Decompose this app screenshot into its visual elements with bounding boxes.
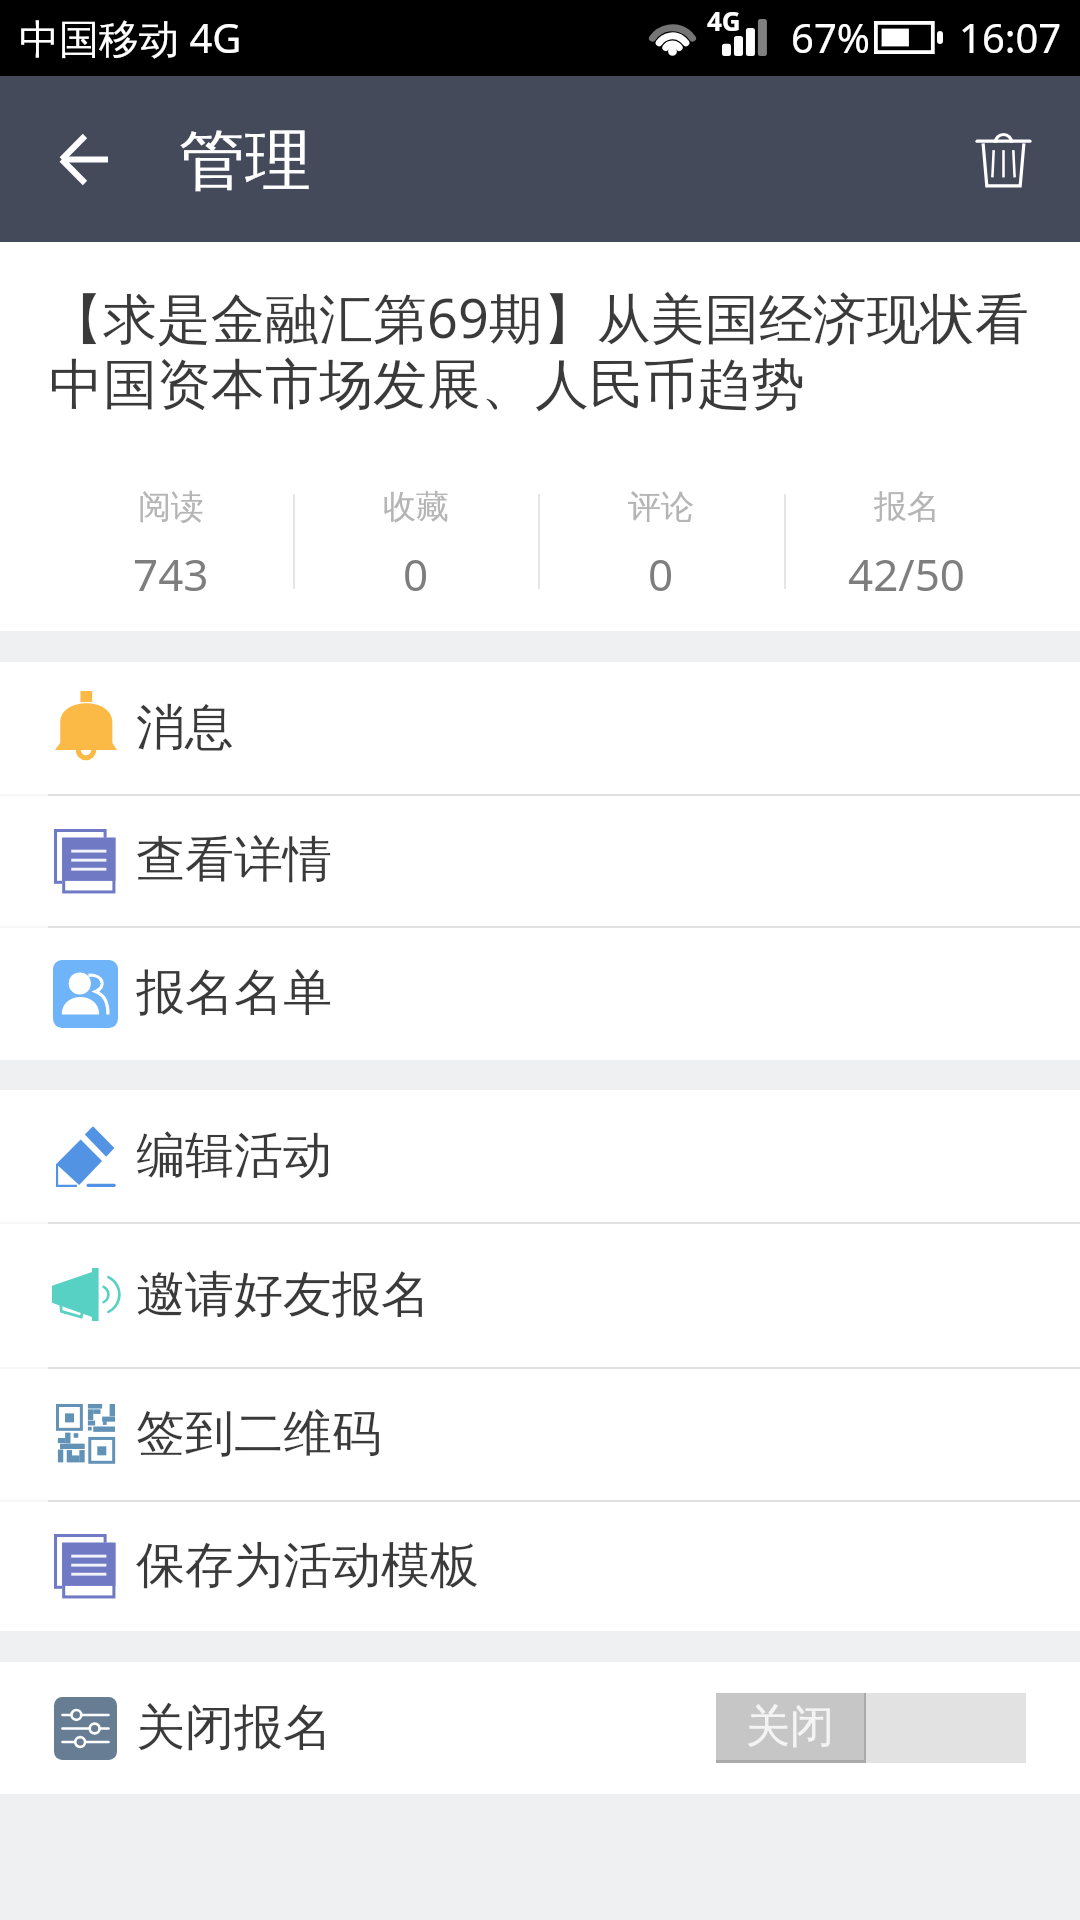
staticText: 16:07 [959, 10, 1062, 64]
button[interactable]: 编辑活动 [0, 1090, 1080, 1222]
staticText: 中国移动 4G [19, 10, 242, 65]
button[interactable]: 关闭报名 [0, 1662, 1080, 1794]
staticText: 评论 [628, 486, 694, 528]
staticText: 4G [707, 3, 741, 38]
staticText: 消息 [136, 697, 234, 759]
staticText: 关闭 [746, 1699, 834, 1754]
button[interactable]: 关闭 [716, 1693, 1026, 1763]
button[interactable]: Back [0, 76, 155, 242]
staticText: 42/50 [848, 544, 966, 604]
button[interactable]: Delete [930, 76, 1080, 242]
staticText: 0 [403, 544, 429, 604]
staticText: 关闭报名 [136, 1697, 332, 1759]
staticText: 67% [791, 10, 870, 64]
button[interactable]: 消息 [0, 662, 1080, 794]
staticText: 阅读 [138, 486, 204, 528]
staticText: 保存为活动模板 [136, 1535, 479, 1597]
staticText: 管理 [179, 119, 311, 202]
staticText: 查看详情 [136, 829, 332, 891]
staticText: 报名 [874, 486, 940, 528]
button[interactable]: 签到二维码 [0, 1367, 1080, 1500]
button[interactable]: 邀请好友报名 [0, 1222, 1080, 1367]
staticText: 0 [648, 544, 674, 604]
staticText: 【求是金融汇第69期】从美国经济现状看中国资本市场发展、人民币趋势 [49, 280, 1036, 419]
button[interactable]: 保存为活动模板 [0, 1500, 1080, 1631]
staticText: 743 [133, 544, 209, 604]
staticText: 编辑活动 [136, 1125, 332, 1187]
button[interactable]: 查看详情 [0, 794, 1080, 926]
staticText: 报名名单 [136, 962, 332, 1024]
staticText: 签到二维码 [136, 1403, 381, 1465]
button[interactable]: 报名名单 [0, 926, 1080, 1060]
staticText: 收藏 [383, 486, 449, 528]
staticText: 邀请好友报名 [136, 1264, 430, 1326]
